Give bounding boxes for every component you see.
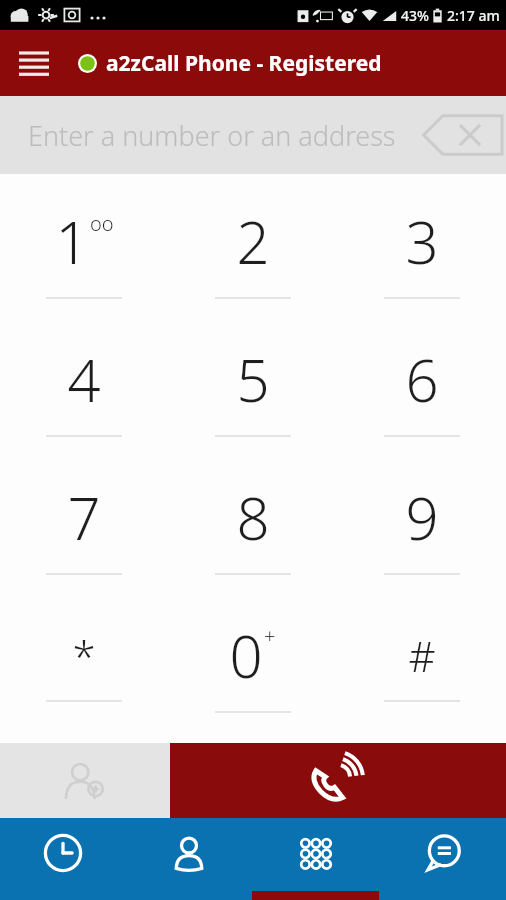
- staticText: 1: [55, 202, 89, 281]
- button[interactable]: 7: [0, 457, 168, 595]
- staticText: 2: [236, 202, 270, 281]
- button[interactable]: Menu: [8, 37, 60, 89]
- button[interactable]: Contacts: [126, 818, 252, 900]
- staticText: oo: [90, 210, 114, 237]
- staticText: 3: [405, 202, 439, 281]
- staticText: Enter a number or an address: [28, 117, 396, 154]
- button[interactable]: 1: [0, 182, 168, 319]
- button[interactable]: 3: [337, 182, 506, 319]
- button[interactable]: 0: [168, 595, 337, 733]
- staticText: 0: [229, 616, 263, 695]
- button[interactable]: Add contact: [0, 743, 170, 818]
- staticText: 2:17 am: [447, 6, 500, 25]
- staticText: 7: [67, 478, 101, 557]
- staticText: 43%: [401, 6, 429, 25]
- button[interactable]: #: [337, 595, 506, 733]
- button[interactable]: 9: [337, 457, 506, 595]
- staticText: #: [408, 627, 436, 684]
- button[interactable]: Messages: [379, 818, 506, 900]
- button[interactable]: 6: [337, 319, 506, 457]
- staticText: a2zCall Phone - Registered: [106, 49, 382, 78]
- staticText: *: [72, 627, 96, 684]
- staticText: +: [264, 622, 276, 649]
- button[interactable]: Backspace: [422, 104, 506, 166]
- button[interactable]: Enter a number or an address: [0, 96, 506, 174]
- button[interactable]: 8: [168, 457, 337, 595]
- button[interactable]: 4: [0, 319, 168, 457]
- staticText: 9: [405, 478, 439, 557]
- button[interactable]: 2: [168, 182, 337, 319]
- staticText: 5: [236, 340, 270, 419]
- staticText: 4: [67, 340, 101, 419]
- button[interactable]: 5: [168, 319, 337, 457]
- button[interactable]: Dialpad: [252, 818, 379, 900]
- button[interactable]: Call: [170, 743, 506, 818]
- button[interactable]: *: [0, 595, 168, 733]
- staticText: 6: [405, 340, 439, 419]
- button[interactable]: Recent calls: [0, 818, 126, 900]
- staticText: 8: [236, 478, 270, 557]
